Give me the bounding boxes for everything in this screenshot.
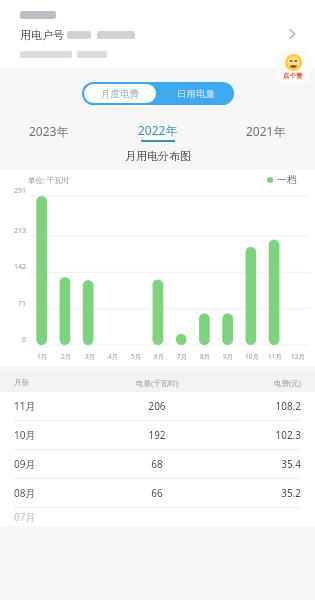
staticText: 11月	[268, 352, 282, 361]
button[interactable]: 2022年	[131, 122, 185, 142]
staticText: 213	[4, 226, 26, 236]
staticText: 8月	[200, 352, 211, 361]
staticText: 电费(元)	[208, 378, 301, 388]
staticText: 单位: 千瓦时	[28, 175, 70, 185]
staticText: 月份	[14, 378, 106, 387]
staticText: 09月	[14, 457, 106, 471]
staticText: 142	[4, 262, 26, 272]
staticText: 电量(千瓦时)	[106, 378, 208, 388]
staticText: 35.4	[208, 457, 301, 471]
button[interactable]: 日用电量	[158, 82, 234, 105]
staticText: 11月	[14, 399, 106, 413]
staticText: 10月	[245, 352, 259, 361]
staticText: 2023年	[29, 123, 69, 139]
staticText: 192	[106, 428, 208, 442]
staticText: 4月	[108, 352, 119, 361]
staticText: 08月	[14, 486, 106, 500]
staticText: 2021年	[246, 123, 286, 139]
staticText: 7月	[177, 352, 188, 361]
staticText: 68	[106, 457, 208, 471]
button[interactable]: 09月	[0, 450, 315, 479]
button[interactable]: 月度电费	[84, 84, 156, 103]
staticText: 月用电分布图	[125, 149, 191, 163]
staticText: 102.3	[208, 428, 301, 442]
staticText: 6月	[154, 352, 165, 361]
staticText: 206	[106, 399, 208, 413]
button[interactable]: 2021年	[239, 123, 293, 141]
button[interactable]: 2023年	[22, 123, 76, 141]
button[interactable]: 08月	[0, 479, 315, 508]
staticText: 用电户号	[20, 28, 64, 42]
staticText: 1月	[37, 352, 48, 361]
button[interactable]: 10月	[0, 421, 315, 450]
staticText: 2022年	[138, 122, 178, 138]
staticText: 月度电费	[101, 88, 139, 100]
staticText: 2月	[61, 352, 72, 361]
staticText: 日用电量	[177, 88, 215, 100]
button[interactable]: 点个赞	[275, 50, 311, 84]
button[interactable]: 详情	[281, 23, 303, 45]
staticText: 12月	[291, 352, 305, 361]
staticText: 3月	[85, 352, 96, 361]
staticText: 点个赞	[283, 72, 303, 80]
staticText: 35.2	[208, 486, 301, 500]
staticText: 9月	[223, 352, 234, 361]
staticText: 291	[4, 186, 26, 196]
button[interactable]: 11月	[0, 392, 315, 421]
button[interactable]: 07月	[0, 508, 315, 526]
staticText: 108.2	[208, 399, 301, 413]
staticText: 71	[4, 299, 26, 309]
staticText: 0	[4, 335, 26, 345]
staticText: 5月	[131, 352, 142, 361]
staticText: 10月	[14, 428, 106, 442]
staticText: 一档	[277, 173, 297, 186]
staticText: 66	[106, 486, 208, 500]
staticText: 07月	[14, 510, 106, 524]
button[interactable]: 用电户号	[0, 0, 315, 68]
